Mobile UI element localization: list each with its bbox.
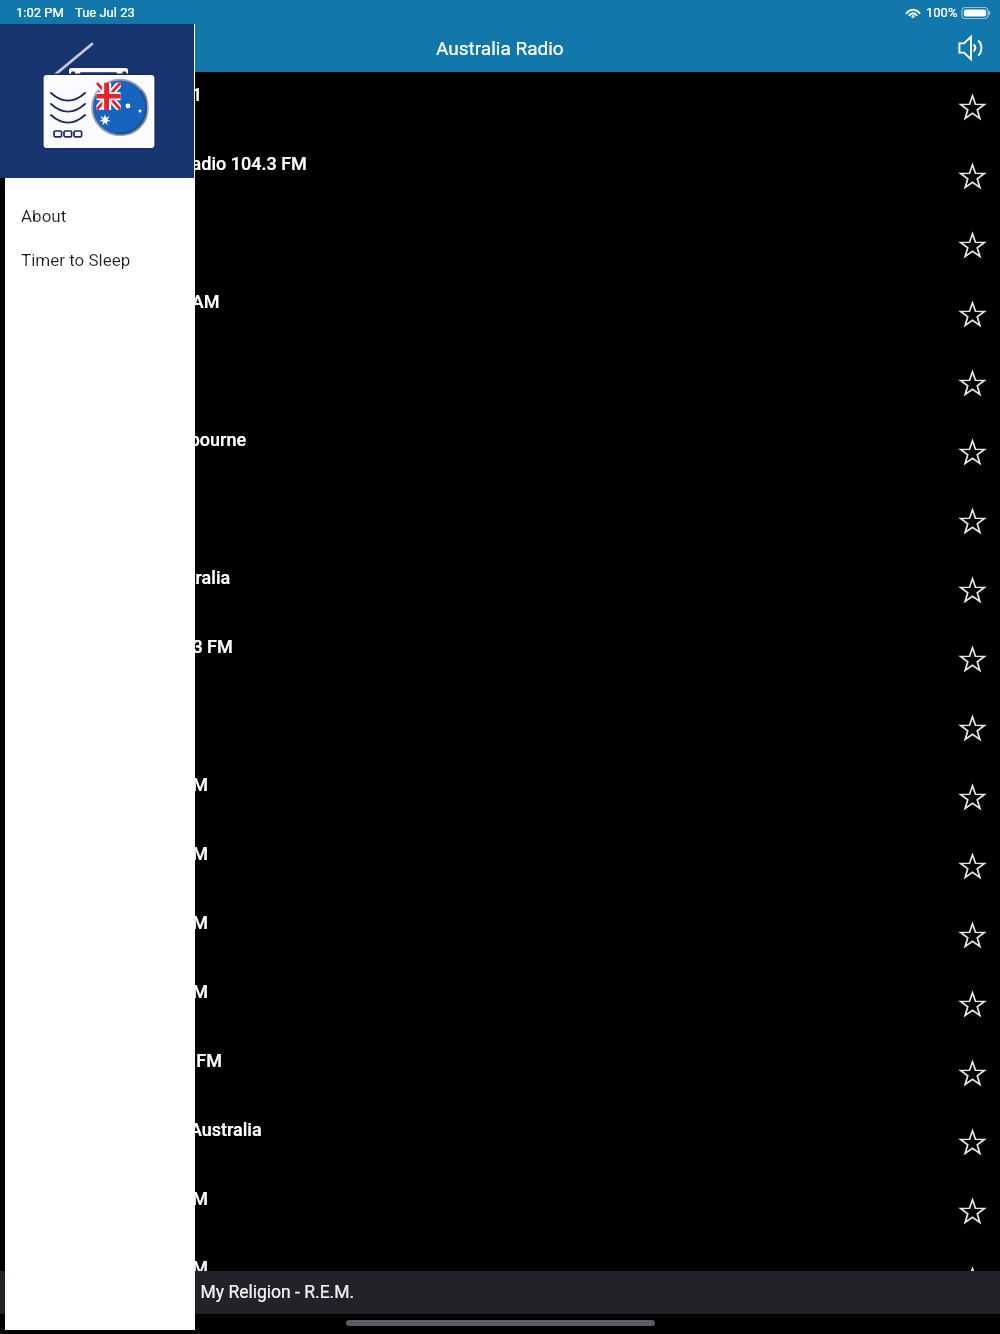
staticText: About (21, 206, 67, 226)
button[interactable]: Favorite (951, 1259, 993, 1301)
button[interactable]: Smooth 91.5 FM Melbourne (0, 417, 1000, 486)
staticText: Smooth 91.5 FM Melbourne (22, 429, 247, 450)
staticText: Gold Sydney FM 104.1 (22, 84, 203, 105)
staticText: Tue Jul 23 (75, 5, 135, 20)
button[interactable]: Favorite (951, 638, 993, 680)
staticText: SBS Radio 93.1 FM AM (22, 912, 209, 933)
button[interactable]: Favorite (951, 293, 993, 335)
button[interactable]: Nova 96.9 Radio FM (0, 348, 1000, 417)
button[interactable]: Favorite (951, 569, 993, 611)
button[interactable]: Losing My Religion - R.E.M. (0, 1271, 1000, 1314)
button[interactable]: Favorite (951, 86, 993, 128)
staticText: WSFM 101.7 Sydney AM (22, 291, 220, 312)
button[interactable]: SBS Radio 93.1 FM AM (0, 900, 1000, 969)
staticText: 1:02 PM (16, 5, 64, 20)
button[interactable]: Triple M 104.9 FM (0, 210, 1000, 279)
staticText: KIIS 101.1 Sydney 103 FM (22, 636, 233, 657)
button[interactable]: WSFM 101.7 Sydney AM (0, 279, 1000, 348)
button[interactable]: About (5, 194, 195, 238)
button[interactable]: SBS Radio 93.1 FM AM (0, 1176, 1000, 1245)
button[interactable]: Favorite (951, 845, 993, 887)
button[interactable]: Gold Sydney FM 104.1 (0, 72, 1000, 141)
button[interactable]: Favorite (951, 1121, 993, 1163)
button[interactable]: Favorite (951, 707, 993, 749)
staticText: SBS Radio 93.1 FM AM (22, 774, 209, 795)
staticText: SBS Radio 93.1 FM AM (22, 981, 209, 1002)
staticText: SBS Radio 93.1 FM AM (22, 843, 209, 864)
staticText: Losing My Religion - R.E.M. (144, 1282, 355, 1303)
button[interactable]: Timer to Sleep (5, 238, 195, 282)
staticText: SBS Radio 93.1 FM AM (22, 1257, 209, 1278)
staticText: Timer to Sleep (21, 250, 131, 270)
button[interactable]: Favorite (951, 431, 993, 473)
button[interactable]: Volume (948, 26, 992, 70)
button[interactable]: SBS Radio 93.1 FM AM (0, 969, 1000, 1038)
button[interactable]: Favorite (951, 1052, 993, 1094)
staticText: SBS Radio 93.1 FM AM (22, 1188, 209, 1209)
button[interactable]: Favorite (951, 155, 993, 197)
button[interactable]: KIIS 101.1 Sydney 103 FM (0, 624, 1000, 693)
button[interactable]: KIIS 101.1 Radio FM (0, 486, 1000, 555)
button[interactable]: Favorite (951, 914, 993, 956)
button[interactable]: 2GB 873 Sydney AM (0, 693, 1000, 762)
button[interactable]: Melbourne Smooth Radio 104.3 FM (0, 141, 1000, 210)
staticText: Australia Radio (436, 37, 564, 59)
button[interactable]: Nova 96.9 Radio Australia (0, 555, 1000, 624)
staticText: Smooth FM 95.3 FM Australia (22, 1119, 262, 1140)
button[interactable]: SBS Radio 93.1 FM AM (0, 831, 1000, 900)
button[interactable]: Favorite (951, 500, 993, 542)
button[interactable]: Favorite (951, 983, 993, 1025)
button[interactable]: Magic 1278 Adelaide FM (0, 1038, 1000, 1107)
staticText: Nova 96.9 Radio Australia (22, 567, 231, 588)
button[interactable]: Smooth FM 95.3 FM Australia (0, 1107, 1000, 1176)
button[interactable]: Favorite (951, 224, 993, 266)
button[interactable]: Favorite (951, 362, 993, 404)
button[interactable]: SBS Radio 93.1 FM AM (0, 762, 1000, 831)
staticText: Magic 1278 Adelaide FM (22, 1050, 223, 1071)
staticText: 100% (926, 5, 958, 20)
staticText: Melbourne Smooth Radio 104.3 FM (22, 153, 307, 174)
button[interactable]: SBS Radio 93.1 FM AM (0, 1245, 1000, 1314)
button[interactable]: Favorite (951, 776, 993, 818)
button[interactable]: Favorite (951, 1190, 993, 1232)
